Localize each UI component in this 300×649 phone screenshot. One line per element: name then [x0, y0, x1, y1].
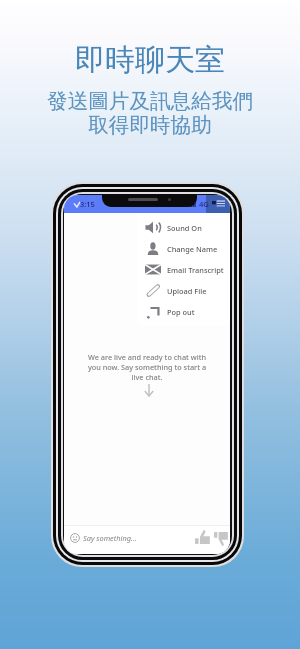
staticText: 即時聊天室: [75, 41, 225, 79]
button[interactable]: Email Transcript: [137, 259, 230, 280]
staticText: Say something...: [83, 533, 137, 543]
button[interactable]: Thumbs up: [195, 531, 210, 545]
button[interactable]: Emoji: [70, 533, 80, 543]
staticText: Upload File: [167, 286, 207, 296]
staticText: 4G: [199, 199, 209, 209]
button[interactable]: Pop out: [137, 301, 230, 322]
button[interactable]: Sound On: [137, 217, 230, 238]
staticText: 發送圖片及訊息給我們 取得即時協助: [47, 88, 253, 139]
staticText: We are live and ready to chat with you n…: [86, 352, 208, 382]
staticText: Email Transcript: [167, 265, 224, 275]
staticText: Change Name: [167, 244, 218, 254]
button[interactable]: Upload File: [137, 280, 230, 301]
button[interactable]: Change Name: [137, 238, 230, 259]
staticText: Sound On: [167, 223, 202, 233]
button[interactable]: Thumbs down: [214, 531, 228, 545]
staticText: 3:15: [80, 199, 95, 209]
staticText: Pop out: [167, 307, 195, 317]
